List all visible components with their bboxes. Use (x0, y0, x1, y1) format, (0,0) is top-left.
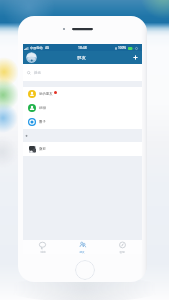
staticText: 新的朋友 (39, 92, 53, 96)
staticText: 朋友 (77, 55, 86, 61)
button[interactable]: 群聊 (23, 101, 142, 115)
staticText: ★ (25, 134, 29, 138)
button[interactable]: Add (132, 54, 139, 61)
button[interactable]: 圈子 (23, 115, 142, 129)
button[interactable]: Friends (62, 240, 102, 254)
staticText: 发现 (119, 250, 125, 253)
staticText: 微影 (39, 147, 46, 151)
button[interactable]: 新的朋友 (23, 87, 142, 101)
button[interactable]: Profile (26, 52, 37, 63)
staticText: 朋友 (79, 250, 85, 253)
button[interactable]: 搜索 (27, 71, 41, 75)
button[interactable]: Home (75, 260, 95, 280)
staticText: 搜索 (34, 71, 41, 75)
staticText: 圈子 (39, 120, 46, 124)
staticText: 4G (45, 46, 50, 50)
staticText: 中国电信 (30, 46, 43, 50)
button[interactable]: Discover (102, 240, 142, 254)
staticText: 消息 (40, 250, 46, 253)
staticText: 100% (118, 46, 127, 50)
staticText: 18:48 (78, 45, 87, 50)
staticText: 群聊 (39, 106, 46, 110)
button[interactable]: 微影 (23, 142, 142, 156)
button[interactable]: Messages (23, 240, 62, 254)
